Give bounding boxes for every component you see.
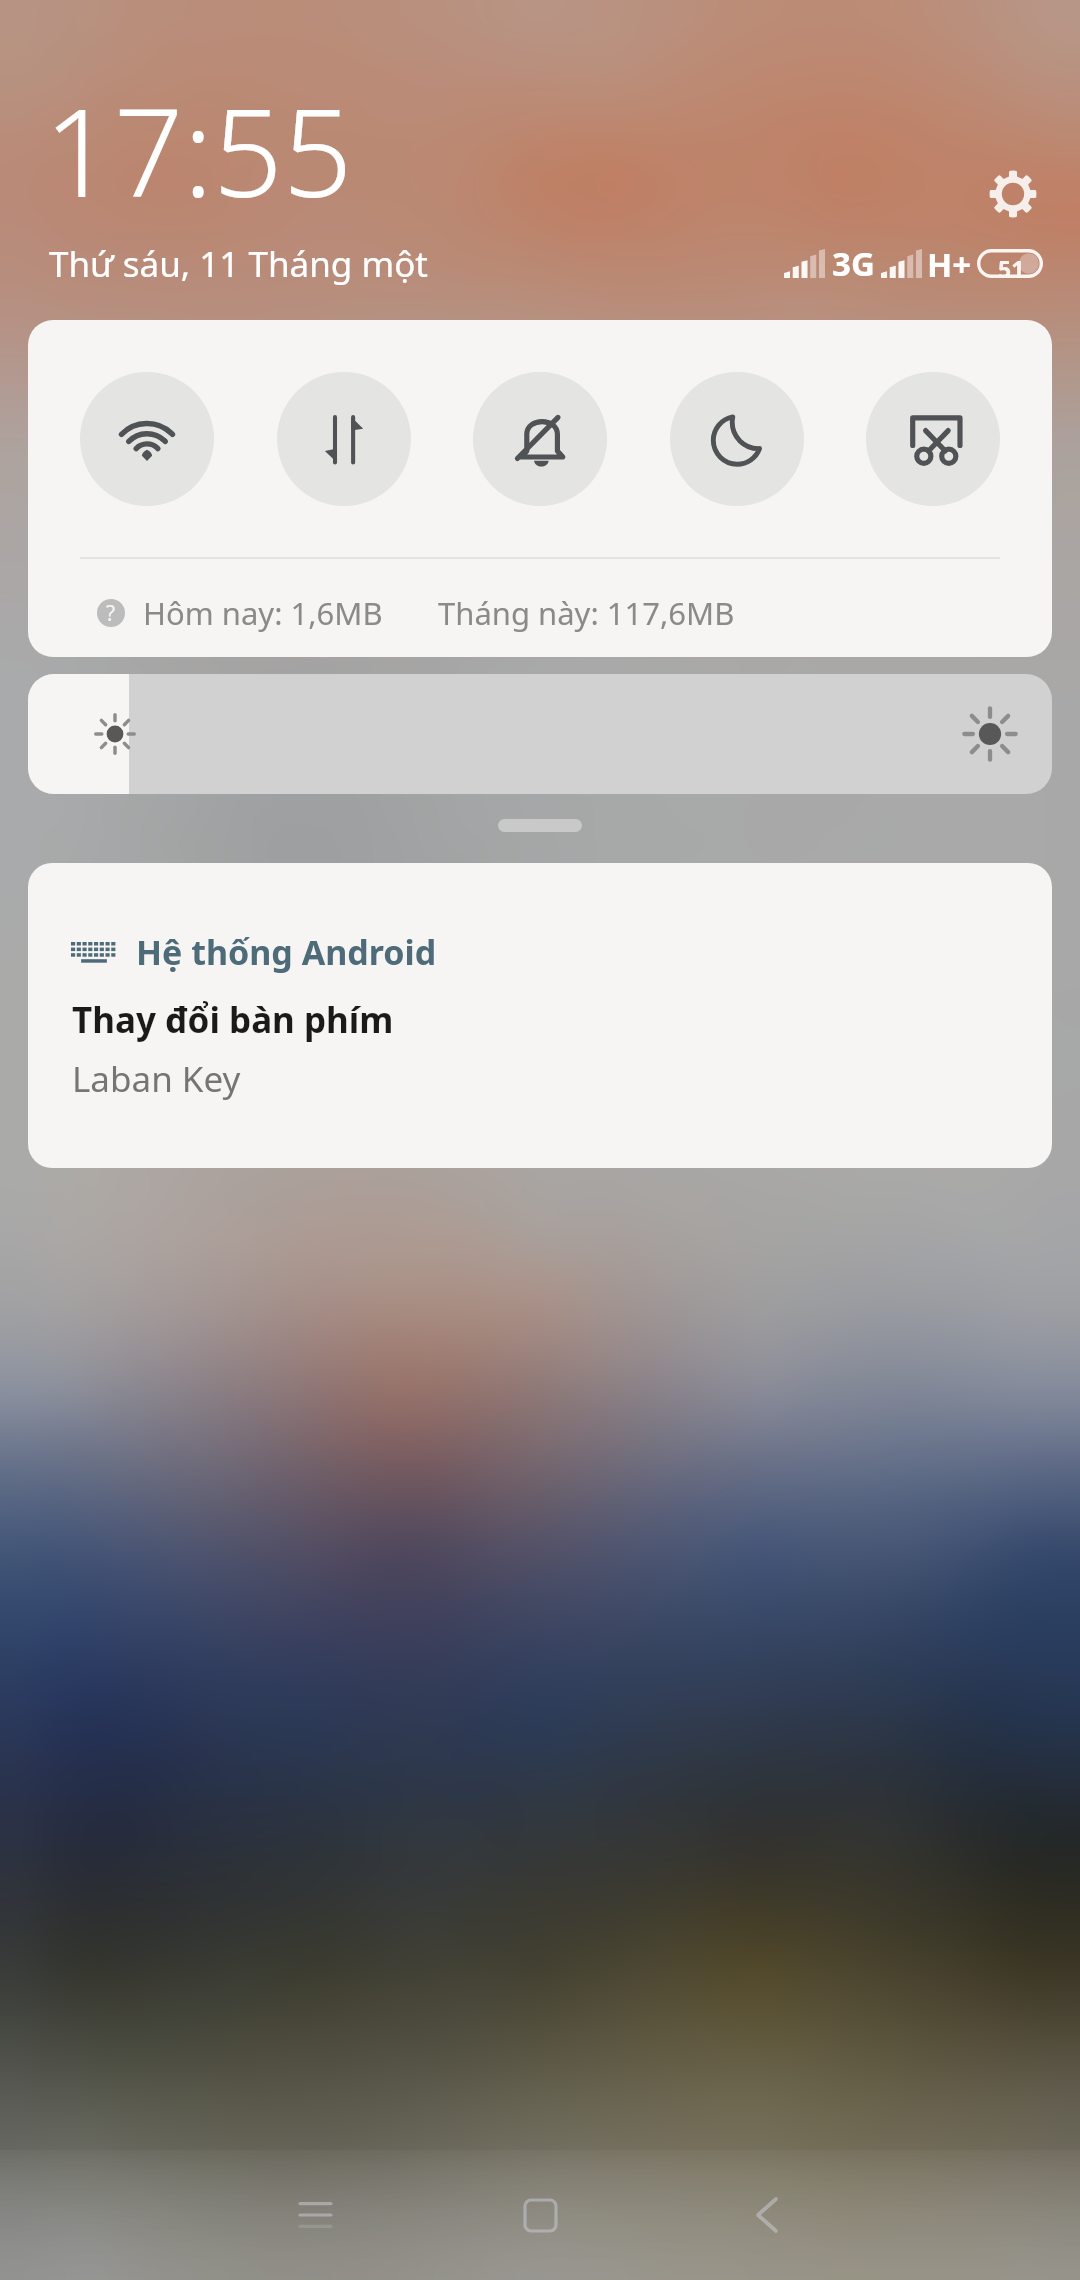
button[interactable]: Brightness: [28, 674, 1052, 794]
button[interactable]: Do not disturb: [670, 372, 804, 506]
staticText: Hệ thống Android: [136, 929, 437, 975]
staticText: H+: [927, 242, 972, 287]
staticText: 3G: [832, 241, 875, 286]
button[interactable]: Home: [480, 2150, 600, 2280]
button[interactable]: Silent: [473, 372, 607, 506]
button[interactable]: Mobile data: [277, 372, 411, 506]
staticText: Thay đổi bàn phím: [72, 996, 394, 1044]
staticText: Tháng này: 117,6MB: [438, 592, 735, 634]
button[interactable]: Screenshot: [866, 372, 1000, 506]
staticText: 51: [998, 253, 1025, 282]
button[interactable]: Settings: [977, 158, 1049, 230]
staticText: Thứ sáu, 11 Tháng một: [49, 240, 428, 288]
button[interactable]: Hệ thống Android: [28, 863, 1052, 1168]
staticText: Laban Key: [72, 1055, 241, 1103]
button[interactable]: Wi-Fi: [80, 372, 214, 506]
staticText: 17:55: [44, 67, 353, 233]
button[interactable]: Recent apps: [255, 2150, 375, 2280]
staticText: ?: [106, 599, 116, 627]
staticText: Hôm nay: 1,6MB: [143, 592, 383, 634]
button[interactable]: Back: [707, 2150, 827, 2280]
